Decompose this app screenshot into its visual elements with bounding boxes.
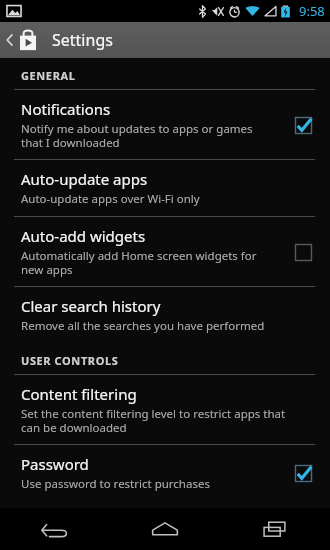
- button[interactable]: Checked: [290, 112, 316, 138]
- staticText: Set the content filtering level to restr…: [21, 406, 286, 435]
- button[interactable]: Navigate up: [0, 22, 42, 58]
- button[interactable]: Recent apps: [220, 508, 330, 550]
- button[interactable]: Auto-update apps: [0, 160, 330, 216]
- staticText: Clear search history: [21, 296, 161, 316]
- staticText: Settings: [52, 29, 113, 51]
- button[interactable]: Home: [110, 508, 220, 550]
- button[interactable]: Content filtering: [0, 375, 330, 444]
- staticText: Use password to restrict purchases: [21, 476, 210, 492]
- staticText: 9:58: [299, 2, 325, 20]
- staticText: Auto-update apps: [21, 169, 148, 189]
- button[interactable]: Checked: [290, 460, 316, 486]
- staticText: Auto-add widgets: [21, 226, 146, 246]
- staticText: Remove all the searches you have perform…: [21, 318, 265, 334]
- button[interactable]: Auto-add widgets: [0, 217, 330, 286]
- button[interactable]: Unchecked: [290, 239, 316, 265]
- button[interactable]: Password: [0, 445, 330, 501]
- staticText: Notifications: [21, 99, 111, 119]
- staticText: Password: [21, 454, 89, 474]
- staticText: USER CONTROLS: [21, 353, 119, 368]
- staticText: Notify me about updates to apps or games…: [21, 121, 253, 150]
- staticText: GENERAL: [21, 68, 76, 83]
- button[interactable]: Back: [0, 508, 110, 550]
- staticText: Automatically add Home screen widgets fo…: [21, 248, 257, 277]
- staticText: Content filtering: [21, 384, 137, 404]
- staticText: Auto-update apps over Wi-Fi only: [21, 191, 200, 207]
- button[interactable]: Clear search history: [0, 287, 330, 343]
- button[interactable]: Notifications: [0, 90, 330, 159]
